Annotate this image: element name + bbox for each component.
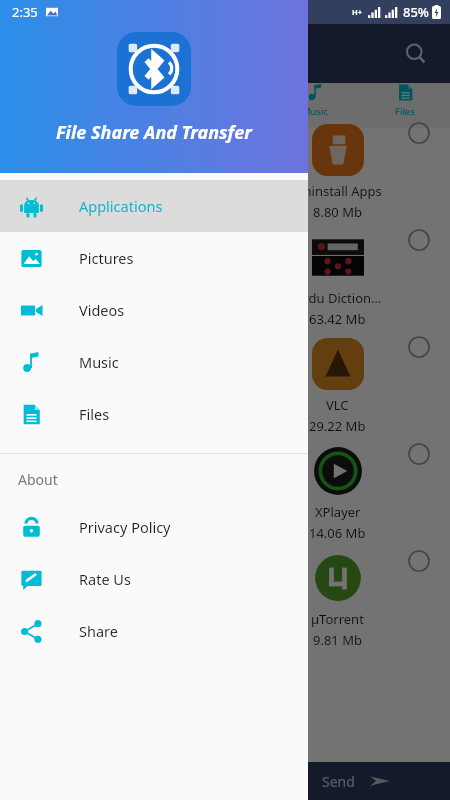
staticText: 85% <box>403 3 429 21</box>
staticText: 7.1 Mb <box>92 524 134 542</box>
button[interactable]: Search <box>396 34 436 74</box>
button[interactable]: Pictures <box>0 232 308 284</box>
staticText: µTorrent <box>311 610 364 628</box>
button[interactable]: Videos <box>180 83 270 118</box>
staticText: Send <box>322 772 355 791</box>
staticText: 9.81 Mb <box>313 631 362 649</box>
staticText: 44.0 Mb <box>88 417 137 435</box>
button[interactable]: Applications <box>0 180 308 232</box>
button[interactable]: Music <box>0 336 308 388</box>
button[interactable]: Privacy Policy <box>0 501 308 553</box>
button[interactable]: Bluetooth… <box>0 221 225 328</box>
staticText: Share <box>79 621 118 641</box>
staticText: 63.42 Mb <box>309 310 366 328</box>
button[interactable]: War <box>0 542 225 649</box>
button[interactable]: µTorrent <box>225 542 450 649</box>
button[interactable]: Rate Us <box>0 553 308 605</box>
staticText: Music <box>79 352 119 372</box>
staticText: Bluetooth… <box>77 289 148 307</box>
button[interactable]: Videos <box>0 284 308 336</box>
staticText: 14.06 Mb <box>309 524 366 542</box>
staticText: 18.23 Mb <box>84 203 141 221</box>
button[interactable]: Send <box>0 762 450 800</box>
staticText: Applications <box>79 196 163 216</box>
staticText: Pictures <box>117 105 153 118</box>
button[interactable]: VLC <box>225 328 450 435</box>
button[interactable]: Files <box>0 388 308 440</box>
button[interactable]: Internal <box>0 114 225 221</box>
button[interactable]: Pictures <box>90 83 180 118</box>
staticText: Uninstall Apps <box>294 182 382 200</box>
button[interactable]: Video… <box>0 328 225 435</box>
staticText: 5.4 Mb <box>92 631 134 649</box>
staticText: About <box>18 470 58 489</box>
staticText: Videos <box>79 300 125 320</box>
button[interactable]: Apps <box>0 83 90 118</box>
staticText: Video… <box>90 396 135 414</box>
staticText: File Share And Transfer <box>56 120 252 145</box>
staticText: Pictures <box>79 248 134 268</box>
staticText: 8.80 Mb <box>313 203 362 221</box>
staticText: File Share And Transfer <box>16 41 223 67</box>
staticText: Rate Us <box>79 569 131 589</box>
staticText: 29.22 Mb <box>309 417 366 435</box>
staticText: Files <box>79 404 110 424</box>
button[interactable]: Urdu Diction… <box>225 221 450 328</box>
button[interactable]: Share <box>0 605 308 657</box>
button[interactable]: XPlayer <box>225 435 450 542</box>
staticText: Privacy Policy <box>79 517 171 537</box>
staticText: Urdu Diction… <box>294 289 382 307</box>
staticText: 2:35 <box>12 3 38 21</box>
staticText: VLC <box>326 396 349 414</box>
button[interactable]: Uninstall Apps <box>225 114 450 221</box>
staticText: H+ <box>352 7 363 17</box>
staticText: Files <box>395 105 415 118</box>
staticText: 12.5 Mb <box>88 310 137 328</box>
staticText: XPlayer <box>315 503 361 521</box>
staticText: Music <box>302 105 329 118</box>
button[interactable]: Music <box>270 83 360 118</box>
button[interactable]: Files <box>360 83 450 118</box>
button[interactable]: Lock <box>0 435 225 542</box>
